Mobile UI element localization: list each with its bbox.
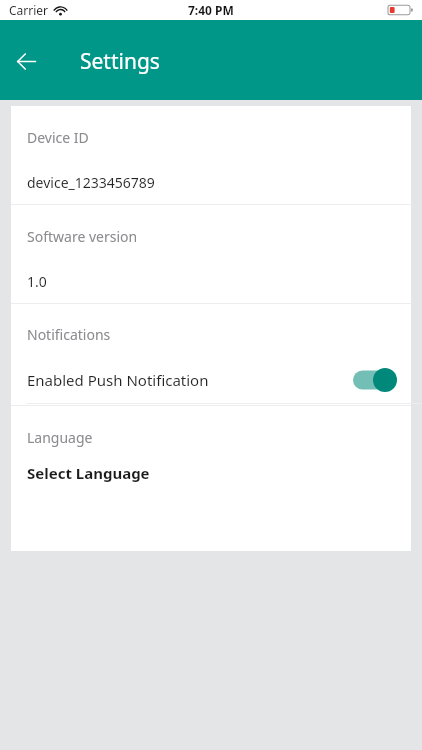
staticText: Notifications [27,325,111,344]
staticText: Language [27,428,93,447]
button[interactable]: Enabled Push Notification toggle [353,368,397,392]
staticText: Select Language [27,463,150,483]
button[interactable]: Back [4,39,48,83]
staticText: Settings [80,47,160,76]
button[interactable]: Enabled Push Notification [11,360,411,400]
button[interactable]: Select Language [11,447,411,499]
staticText: Device ID [27,128,89,147]
staticText: device_1233456789 [27,173,155,192]
staticText: Software version [27,227,138,246]
staticText: 1.0 [27,272,47,291]
staticText: Enabled Push Notification [27,370,209,390]
staticText: Carrier [9,2,49,18]
staticText: 7:40 PM [188,2,234,18]
